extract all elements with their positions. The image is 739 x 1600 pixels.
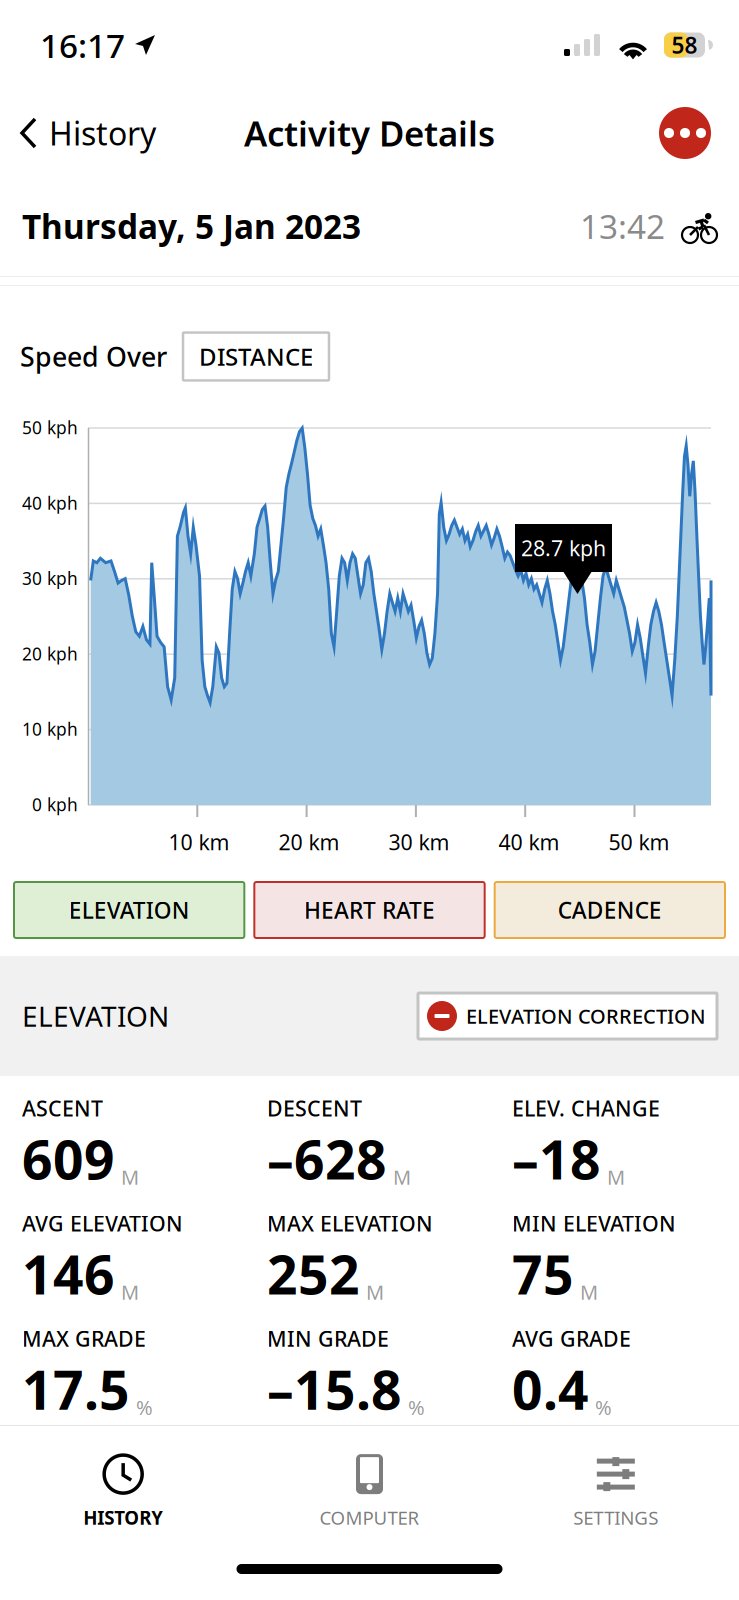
staticText: M [366,1279,384,1305]
staticText: 40 kph [22,491,78,514]
staticText: M [121,1164,139,1190]
staticText: 0.4 [512,1354,589,1424]
staticText: 609 [22,1123,115,1194]
staticText: 10 kph [22,718,78,741]
staticText: –628 [267,1123,387,1194]
staticText: MAX GRADE [22,1324,146,1353]
staticText: CADENCE [558,895,662,925]
staticText: 50 kph [22,416,78,439]
staticText: MIN ELEVATION [512,1209,676,1237]
staticText: 20 km [278,828,339,856]
button[interactable]: History [0,100,156,166]
staticText: ASCENT [22,1094,103,1122]
staticText: M [121,1279,139,1305]
staticText: Thursday, 5 Jan 2023 [22,204,361,248]
staticText: M [607,1164,625,1190]
staticText: –15.8 [267,1354,402,1424]
staticText: 30 kph [22,567,78,590]
staticText: MIN GRADE [267,1324,389,1353]
button[interactable]: ELEVATION CORRECTION [418,993,717,1039]
staticText: M [393,1164,411,1190]
button[interactable]: ELEVATION [14,882,244,938]
button[interactable]: SETTINGS [493,1434,739,1530]
staticText: 13:42 [580,204,665,248]
staticText: History [49,112,156,154]
staticText: ELEVATION CORRECTION [466,1003,706,1029]
staticText: 17.5 [22,1354,130,1424]
staticText: 20 kph [22,642,78,665]
staticText: 50 km [608,828,669,856]
staticText: HEART RATE [304,895,435,925]
button[interactable]: DISTANCE [183,333,329,380]
staticText: % [595,1394,612,1420]
staticText: 30 km [388,828,449,856]
staticText: Activity Details [244,110,495,156]
staticText: M [580,1279,598,1305]
staticText: 146 [22,1238,115,1309]
staticText: 10 km [168,828,229,856]
staticText: 252 [267,1238,360,1309]
staticText: COMPUTER [319,1505,419,1530]
staticText: 58 [671,30,697,60]
staticText: DISTANCE [199,341,313,372]
staticText: % [136,1394,153,1420]
staticText: 16:17 [40,23,125,67]
staticText: 75 [512,1238,574,1309]
button[interactable]: HEART RATE [254,882,485,938]
staticText: ELEVATION [22,997,169,1035]
staticText: –18 [512,1123,601,1194]
button[interactable]: COMPUTER [246,1434,493,1530]
button[interactable]: More options [659,99,739,167]
staticText: ELEVATION [69,895,190,925]
staticText: ELEV. CHANGE [512,1094,660,1122]
staticText: AVG ELEVATION [22,1209,183,1237]
staticText: 28.7 kph [521,534,606,562]
button[interactable]: CADENCE [495,882,725,938]
staticText: HISTORY [83,1505,163,1530]
staticText: AVG GRADE [512,1324,631,1353]
staticText: MAX ELEVATION [267,1209,433,1237]
staticText: Speed Over [20,339,167,374]
button[interactable]: HISTORY [0,1434,246,1530]
staticText: % [408,1394,425,1420]
staticText: DESCENT [267,1094,362,1122]
staticText: SETTINGS [573,1505,658,1530]
staticText: 40 km [498,828,559,856]
staticText: 0 kph [32,793,78,816]
